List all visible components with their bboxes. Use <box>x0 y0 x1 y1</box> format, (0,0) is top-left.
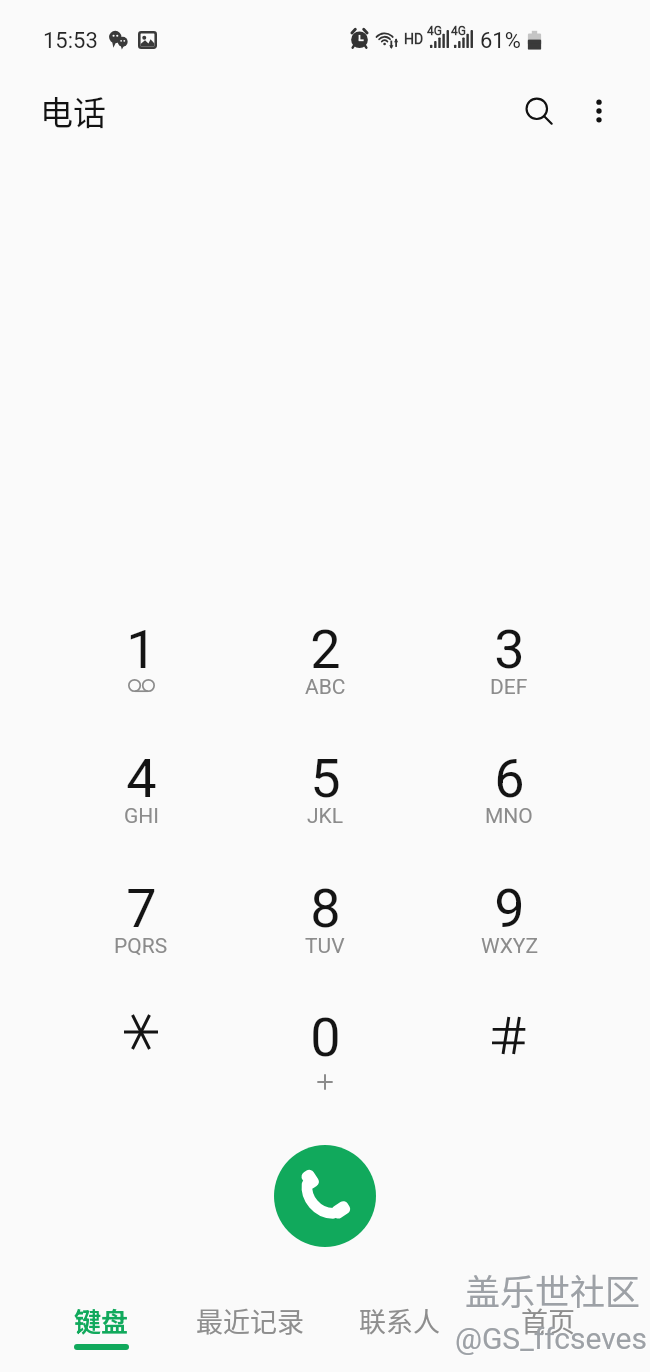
staticText: TUV <box>305 934 345 959</box>
staticText: 6 <box>494 747 525 810</box>
staticText: 盖乐世社区 <box>466 1265 642 1316</box>
staticText: 9 <box>494 877 525 940</box>
staticText: 联系人 <box>359 1301 440 1340</box>
button[interactable]: pound <box>417 987 601 1116</box>
staticText: WXYZ <box>481 934 538 959</box>
staticText: 8 <box>310 877 341 940</box>
staticText: 15:53 <box>43 28 98 54</box>
button[interactable]: 6 MNO <box>417 728 601 857</box>
staticText: DEF <box>490 675 528 700</box>
button[interactable]: 联系人 <box>325 1290 473 1372</box>
button[interactable]: 5 JKL <box>233 728 417 857</box>
button[interactable]: Search <box>512 84 568 140</box>
button[interactable]: More options <box>571 83 627 139</box>
staticText: 电话 <box>40 87 106 135</box>
staticText: HD <box>404 31 424 47</box>
button[interactable]: 键盘 <box>27 1290 175 1372</box>
button[interactable]: 1 <box>49 599 233 728</box>
staticText: 1 <box>126 618 157 681</box>
staticText: @GS_ffcseves <box>456 1322 648 1357</box>
button[interactable]: 9 WXYZ <box>417 858 601 987</box>
staticText: PQRS <box>114 934 168 959</box>
button[interactable]: star <box>49 987 233 1116</box>
staticText: 61% <box>480 28 521 54</box>
staticText: 5 <box>310 747 341 810</box>
staticText: 4 <box>126 747 157 810</box>
button[interactable]: Call <box>274 1145 376 1247</box>
staticText: GHI <box>124 804 159 829</box>
staticText: 盖乐世社区 <box>465 1264 641 1315</box>
staticText: 4G <box>427 24 442 38</box>
staticText: ABC <box>305 675 346 700</box>
staticText: 2 <box>310 618 341 681</box>
staticText: 首页 <box>521 1301 575 1340</box>
staticText: JKL <box>307 804 344 829</box>
button[interactable]: 2 ABC <box>233 599 417 728</box>
staticText: 0 <box>310 1006 341 1069</box>
staticText: 键盘 <box>74 1301 128 1340</box>
button[interactable]: 8 TUV <box>233 858 417 987</box>
staticText: MNO <box>485 804 533 829</box>
button[interactable]: 首页 <box>474 1290 622 1372</box>
button[interactable]: 0 plus <box>233 987 417 1116</box>
button[interactable]: 3 DEF <box>417 599 601 728</box>
staticText: 4G <box>451 24 466 38</box>
button[interactable]: 最近记录 <box>176 1290 324 1372</box>
staticText: 7 <box>126 877 157 940</box>
staticText: @GS_ffcseves <box>455 1321 647 1356</box>
staticText: 最近记录 <box>196 1301 304 1340</box>
staticText: 3 <box>494 618 525 681</box>
button[interactable]: 4 GHI <box>49 728 233 857</box>
button[interactable]: 7 PQRS <box>49 858 233 987</box>
